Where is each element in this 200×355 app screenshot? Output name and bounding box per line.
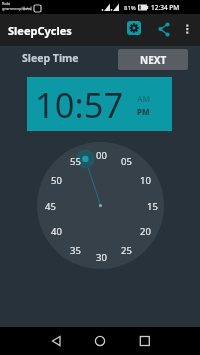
- button[interactable]: [86, 327, 114, 355]
- button[interactable]: [130, 327, 158, 355]
- staticText: 50: [51, 174, 62, 187]
- staticText: grameenphone: [2, 6, 32, 11]
- button[interactable]: AM: [137, 93, 151, 104]
- staticText: 00: [96, 149, 107, 162]
- staticText: Sleep Time: [22, 51, 79, 65]
- staticText: 12:34 PM: [151, 3, 180, 12]
- button[interactable]: PM: [137, 106, 150, 117]
- staticText: 30: [96, 251, 107, 264]
- button[interactable]: [127, 21, 141, 35]
- staticText: 10: [140, 174, 151, 187]
- staticText: 05: [121, 155, 132, 168]
- staticText: 81%: [124, 4, 136, 12]
- staticText: 20: [140, 225, 151, 238]
- button[interactable]: NEXT: [118, 49, 188, 70]
- staticText: NEXT: [140, 53, 167, 67]
- staticText: 10:57: [35, 81, 124, 128]
- button[interactable]: [154, 20, 172, 38]
- button[interactable]: [42, 327, 70, 355]
- staticText: Robi: [2, 1, 11, 6]
- staticText: 45: [45, 200, 56, 213]
- staticText: 35: [70, 244, 81, 257]
- staticText: 25: [121, 244, 132, 257]
- staticText: 55: [70, 155, 81, 168]
- button[interactable]: 10:57: [27, 77, 172, 131]
- button[interactable]: [181, 18, 195, 42]
- staticText: 15: [147, 200, 158, 213]
- staticText: SleepCycles: [8, 23, 72, 38]
- staticText: 40: [51, 225, 62, 238]
